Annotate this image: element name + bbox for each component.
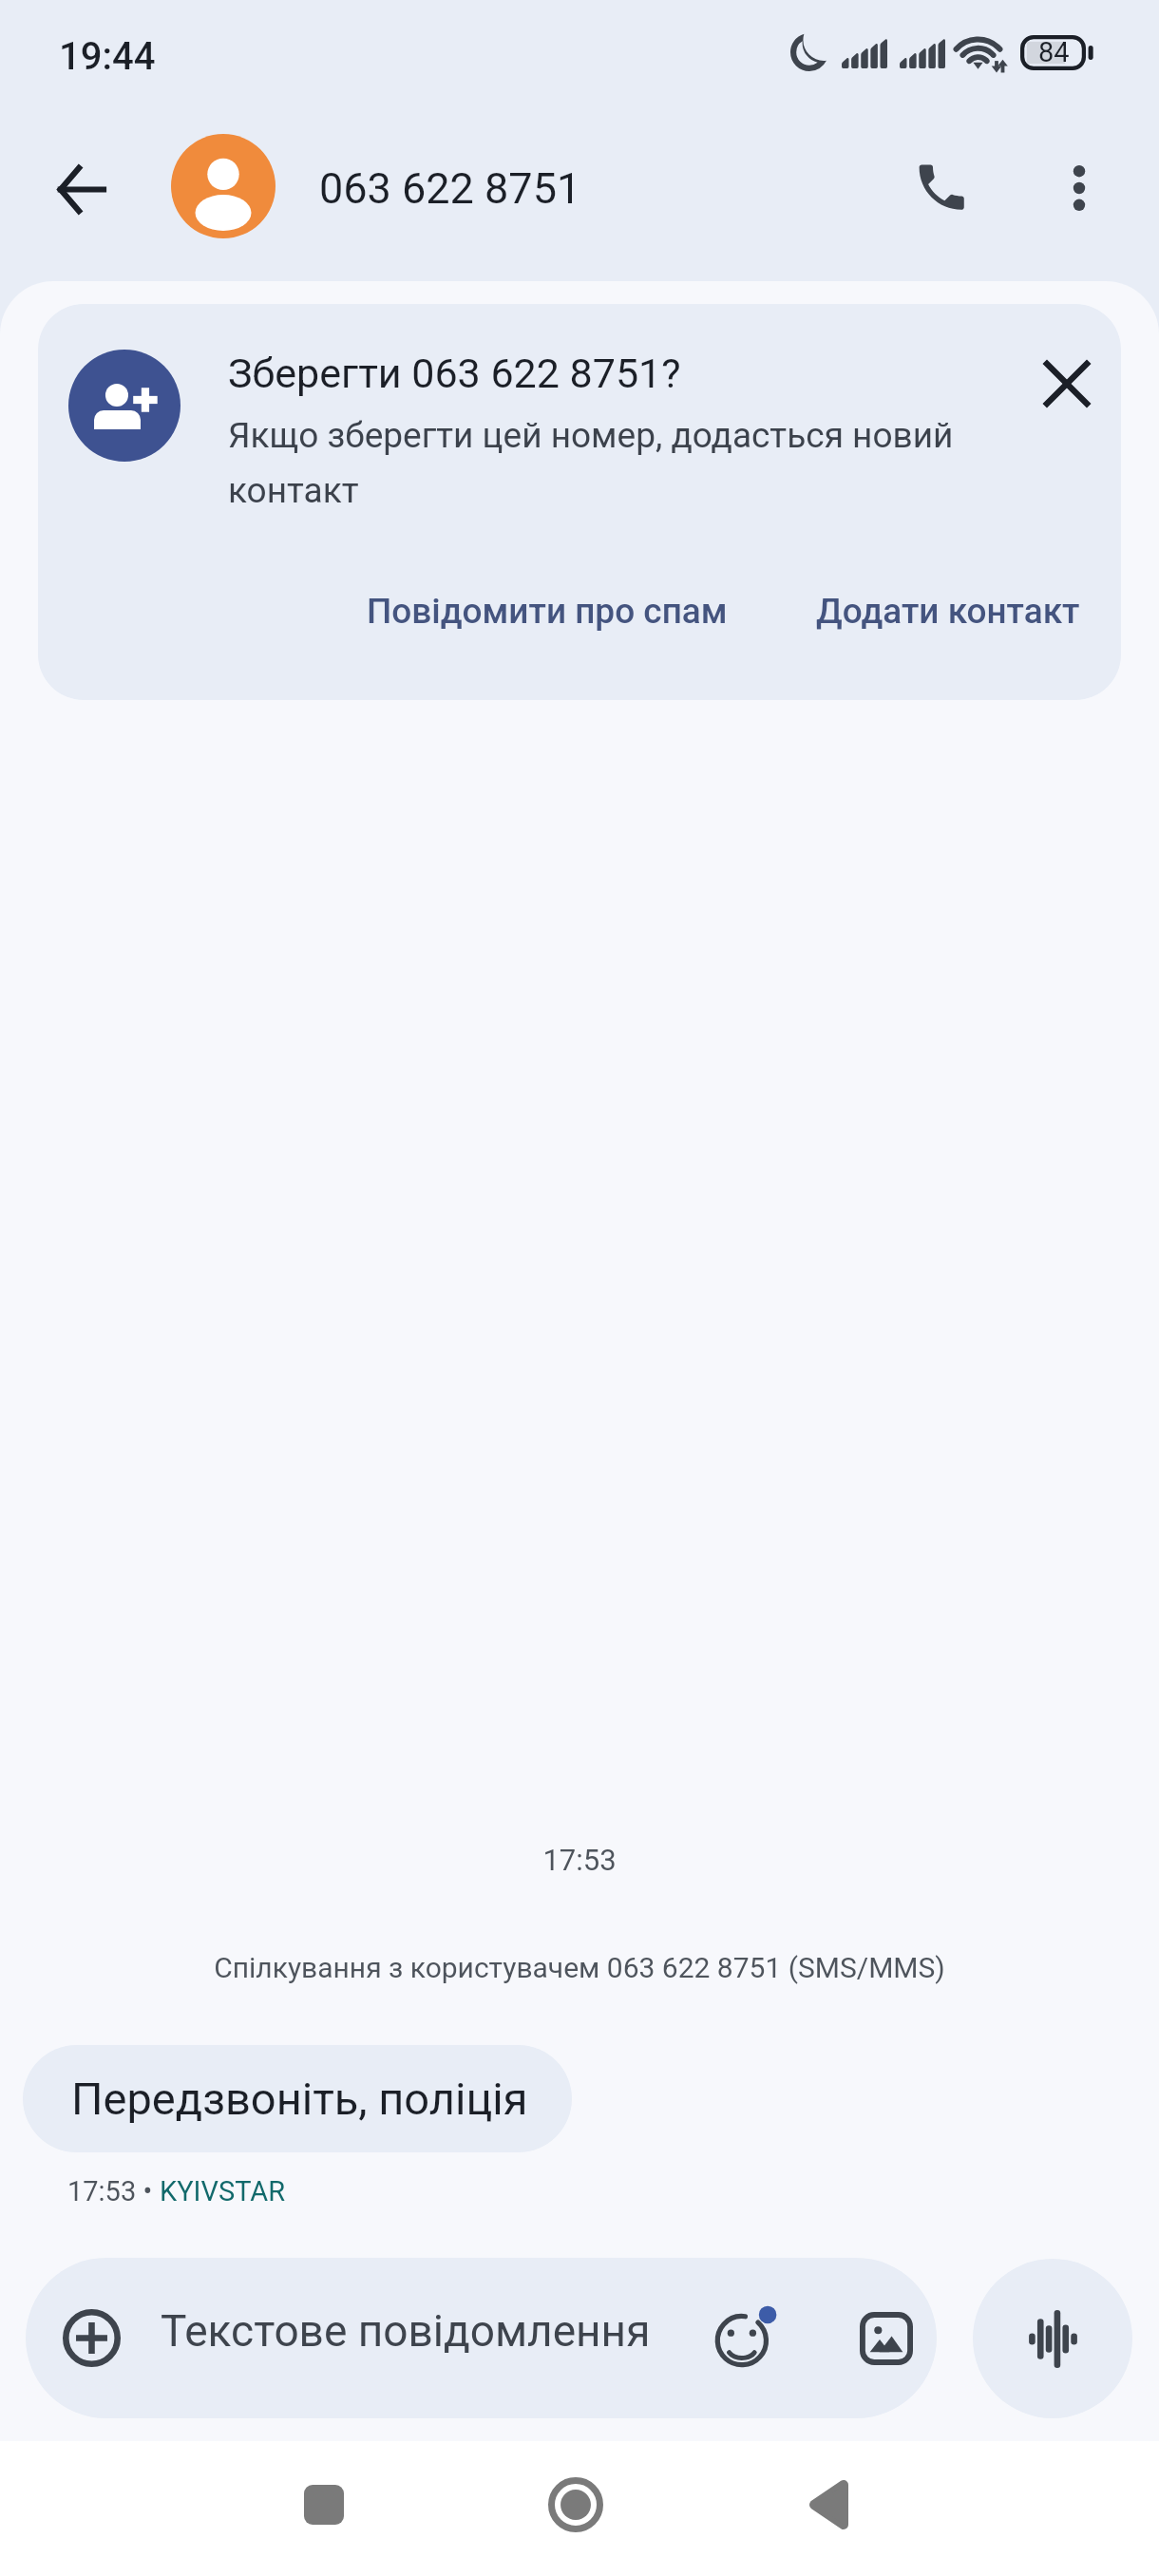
staticText: Додати контакт [816, 591, 1080, 632]
staticText: 063 622 8751 [319, 163, 581, 214]
button[interactable]: Home [500, 2429, 652, 2576]
staticText: 17:53 [0, 1843, 1159, 1877]
staticText: Повідомити про спам [367, 591, 728, 632]
staticText: Якщо зберегти цей номер, додасться новий… [228, 415, 954, 511]
staticText: 84 [1038, 36, 1070, 68]
button[interactable]: Gallery [834, 2286, 937, 2391]
staticText: Передзвоніть, поліція [71, 2073, 528, 2125]
staticText: Зберегти 063 622 8751? [228, 350, 681, 397]
staticText: Текстове повідомлення [161, 2305, 651, 2357]
button[interactable]: Add attachment [39, 2285, 144, 2391]
button[interactable]: Повідомити про спам [346, 574, 749, 649]
staticText: KYIVSTAR [160, 2175, 286, 2207]
button[interactable]: Call [890, 136, 995, 240]
button[interactable]: Додати контакт [795, 574, 1101, 649]
button[interactable]: Передзвоніть, поліція [23, 2045, 572, 2152]
button[interactable]: Back [752, 2429, 904, 2576]
staticText: Спілкування з користувачем 063 622 8751 … [0, 1951, 1159, 1984]
button[interactable]: Emoji [694, 2283, 799, 2388]
button[interactable]: More options [1027, 136, 1131, 240]
button[interactable]: Add attachment [26, 2258, 937, 2418]
button[interactable]: Recent apps [248, 2429, 400, 2576]
button[interactable]: Record voice message [973, 2259, 1132, 2418]
button[interactable]: Contact avatar [171, 134, 275, 238]
button[interactable]: Dismiss [1019, 336, 1114, 431]
staticText: 17:53 • [67, 2175, 160, 2207]
staticText: 19:44 [59, 34, 156, 79]
button[interactable]: Back [29, 138, 132, 240]
